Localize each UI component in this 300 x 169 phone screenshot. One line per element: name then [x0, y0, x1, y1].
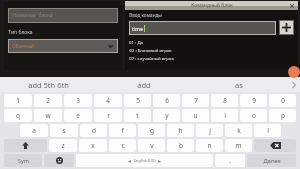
button[interactable]: q: [4, 109, 32, 122]
staticText: 02 : Блоковый игрок: [129, 47, 172, 53]
button[interactable]: b: [167, 139, 194, 152]
staticText: 0: [281, 96, 285, 105]
button[interactable]: Обычный: [8, 39, 118, 53]
button[interactable]: 9: [240, 94, 267, 107]
staticText: Далее: [263, 157, 281, 165]
button[interactable]: Close: [288, 2, 295, 9]
button[interactable]: c: [109, 139, 136, 152]
staticText: l: [267, 126, 269, 135]
button[interactable]: 8: [211, 94, 238, 107]
staticText: k: [237, 126, 241, 135]
staticText: v: [150, 141, 154, 150]
button[interactable]: 4: [94, 94, 122, 107]
staticText: 07 : случайный игрок: [129, 55, 174, 61]
staticText: j: [209, 126, 211, 135]
staticText: p: [281, 111, 285, 120]
staticText: 9: [252, 96, 256, 105]
staticText: Обычный: [12, 43, 34, 49]
button[interactable]: time: [129, 21, 276, 35]
button[interactable]: 2: [34, 94, 62, 107]
staticText: f: [121, 126, 124, 135]
button[interactable]: i: [211, 109, 238, 122]
button[interactable]: add: [96, 77, 191, 92]
button[interactable]: 7: [182, 94, 209, 107]
button[interactable]: e: [64, 109, 92, 122]
staticText: o: [252, 111, 256, 120]
button[interactable]: k: [225, 124, 252, 137]
staticText: add: [137, 80, 151, 90]
button[interactable]: w: [34, 109, 62, 122]
staticText: add 5th 6th: [28, 80, 69, 90]
button[interactable]: h: [167, 124, 194, 137]
staticText: n: [207, 141, 212, 150]
button[interactable]: m: [225, 139, 252, 152]
button[interactable]: Space: [76, 154, 213, 167]
button[interactable]: o: [240, 109, 267, 122]
button[interactable]: y: [153, 109, 180, 122]
staticText: e: [76, 111, 80, 120]
staticText: Название блока: [12, 12, 53, 19]
button[interactable]: 0: [269, 94, 296, 107]
button[interactable]: Emoji: [44, 154, 74, 167]
button[interactable]: j: [196, 124, 223, 137]
staticText: 4: [106, 96, 110, 105]
staticText: i: [224, 111, 226, 120]
staticText: .: [229, 156, 231, 165]
staticText: d: [92, 126, 96, 135]
staticText: as: [235, 80, 243, 90]
staticText: 3: [76, 96, 80, 105]
button[interactable]: Shift: [4, 139, 47, 152]
staticText: h: [178, 126, 183, 135]
staticText: Sym: [18, 157, 29, 164]
button[interactable]: g: [138, 124, 165, 137]
button[interactable]: More suggestions: [288, 77, 300, 92]
button[interactable]: .: [215, 154, 245, 167]
button[interactable]: a: [20, 124, 48, 137]
button[interactable]: 1: [4, 94, 32, 107]
button[interactable]: t: [124, 109, 151, 122]
staticText: English(US): [133, 158, 156, 164]
button[interactable]: Название блока: [8, 8, 118, 23]
button[interactable]: n: [196, 139, 223, 152]
staticText: y: [165, 111, 169, 120]
button[interactable]: as: [191, 77, 286, 92]
staticText: 01 : Да: [129, 39, 143, 45]
button[interactable]: Add: [279, 20, 294, 35]
staticText: Командный блок: [191, 2, 233, 9]
button[interactable]: Backspace: [254, 139, 296, 152]
staticText: 7: [194, 96, 198, 105]
button[interactable]: 6: [153, 94, 180, 107]
staticText: w: [45, 111, 51, 120]
button[interactable]: 5: [124, 94, 151, 107]
staticText: Ввод команды: [129, 12, 162, 18]
staticText: 8: [223, 96, 227, 105]
staticText: c: [121, 141, 125, 150]
staticText: t: [136, 111, 139, 120]
button[interactable]: l: [254, 124, 281, 137]
button[interactable]: f: [109, 124, 136, 137]
staticText: a: [32, 126, 36, 135]
staticText: r: [107, 111, 110, 120]
button[interactable]: Sym: [4, 154, 42, 167]
staticText: Тип блока: [8, 29, 33, 36]
staticText: x: [91, 141, 95, 150]
staticText: z: [61, 141, 65, 150]
button[interactable]: u: [182, 109, 209, 122]
staticText: q: [16, 111, 20, 120]
staticText: m: [235, 141, 242, 150]
button[interactable]: add 5th 6th: [0, 77, 96, 92]
staticText: 2: [46, 96, 50, 105]
button[interactable]: v: [138, 139, 165, 152]
button[interactable]: r: [94, 109, 122, 122]
button[interactable]: p: [269, 109, 296, 122]
button[interactable]: x: [79, 139, 107, 152]
button[interactable]: d: [80, 124, 107, 137]
button[interactable]: Далее: [247, 154, 296, 167]
staticText: 1: [16, 96, 20, 105]
staticText: b: [179, 141, 183, 150]
button[interactable]: 3: [64, 94, 92, 107]
button[interactable]: s: [50, 124, 78, 137]
button[interactable]: Action: [288, 66, 300, 78]
staticText: u: [193, 111, 198, 120]
button[interactable]: z: [49, 139, 77, 152]
